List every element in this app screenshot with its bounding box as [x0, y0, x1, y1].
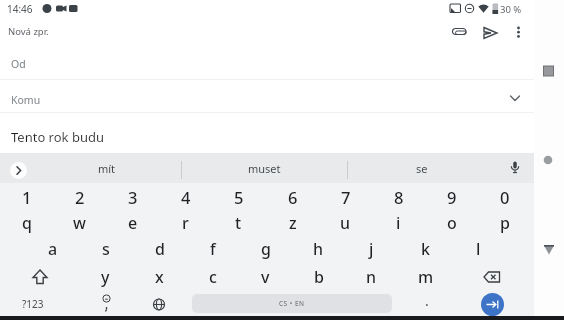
button[interactable] — [0, 113, 535, 153]
button[interactable]: 9 — [425, 184, 478, 210]
button[interactable]: . — [400, 288, 453, 313]
button[interactable]: 5 — [212, 184, 265, 210]
staticText: o — [447, 212, 457, 234]
staticText: e — [128, 212, 138, 234]
button[interactable]: h — [292, 236, 345, 262]
button[interactable]: g — [239, 236, 292, 262]
button[interactable]: k — [399, 236, 452, 262]
button[interactable]: n — [345, 263, 398, 291]
button[interactable]: 0 — [478, 184, 531, 210]
staticText: 14:46 — [7, 2, 33, 16]
button[interactable]: 8 — [372, 184, 425, 210]
button[interactable] — [0, 80, 535, 113]
button[interactable] — [480, 21, 502, 42]
staticText: u — [340, 212, 351, 234]
button[interactable] — [0, 48, 535, 80]
staticText: 9 — [447, 186, 457, 208]
staticText: 0 — [500, 186, 510, 208]
staticText: Od — [11, 57, 26, 71]
button[interactable]: 1 — [0, 184, 53, 210]
staticText: Nová zpr. — [8, 25, 49, 38]
staticText: a — [48, 238, 58, 260]
staticText: b — [314, 266, 324, 288]
button[interactable]: b — [292, 263, 345, 291]
staticText: 4 — [181, 186, 191, 208]
button[interactable]: CS • EN — [192, 294, 392, 313]
button[interactable]: 2 — [53, 184, 106, 210]
button[interactable]: p — [478, 210, 531, 236]
button[interactable]: c — [186, 263, 239, 291]
button[interactable]: muset — [184, 155, 344, 181]
staticText: CS • EN — [279, 299, 305, 308]
staticText: i — [396, 212, 401, 234]
button[interactable]: q — [0, 210, 53, 236]
staticText: z — [289, 212, 297, 234]
button[interactable] — [534, 145, 564, 175]
button[interactable]: s — [79, 236, 132, 262]
staticText: l — [476, 238, 481, 260]
button[interactable] — [0, 263, 80, 291]
button[interactable] — [504, 157, 526, 179]
button[interactable]: v — [239, 263, 292, 291]
button[interactable] — [510, 21, 528, 42]
button[interactable]: ?123 — [6, 291, 60, 316]
staticText: Komu — [11, 93, 41, 107]
staticText: m — [418, 266, 434, 288]
button[interactable]: t — [212, 210, 265, 236]
button[interactable] — [10, 162, 27, 179]
staticText: s — [102, 238, 110, 260]
staticText: 7 — [341, 186, 351, 208]
button[interactable]: o — [425, 210, 478, 236]
button[interactable]: l — [452, 236, 505, 262]
button[interactable]: w — [53, 210, 106, 236]
staticText: se — [416, 161, 428, 176]
button[interactable] — [466, 263, 520, 291]
button[interactable] — [534, 56, 564, 86]
staticText: 8 — [394, 186, 404, 208]
staticText: ?123 — [22, 297, 44, 311]
staticText: k — [421, 238, 430, 260]
button[interactable]: f — [186, 236, 239, 262]
staticText: 5 — [234, 186, 244, 208]
button[interactable]: r — [159, 210, 212, 236]
button[interactable]: 4 — [159, 184, 212, 210]
button[interactable] — [80, 291, 133, 316]
button[interactable]: e — [106, 210, 159, 236]
staticText: t — [235, 212, 242, 234]
staticText: x — [155, 266, 164, 288]
staticText: p — [500, 212, 510, 234]
button[interactable]: y — [79, 263, 132, 291]
button[interactable] — [448, 21, 471, 42]
button[interactable]: se — [350, 155, 494, 181]
button[interactable]: mít — [40, 155, 174, 181]
staticText: y — [101, 266, 110, 288]
button[interactable]: 3 — [106, 184, 159, 210]
button[interactable]: j — [345, 236, 398, 262]
button[interactable]: z — [266, 210, 319, 236]
staticText: f — [210, 238, 216, 260]
staticText: v — [261, 266, 270, 288]
button[interactable]: 6 — [266, 184, 319, 210]
button[interactable]: u — [319, 210, 372, 236]
staticText: 2 — [75, 186, 85, 208]
button[interactable]: m — [399, 263, 452, 291]
staticText: d — [155, 238, 165, 260]
button[interactable] — [534, 231, 564, 261]
button[interactable] — [133, 291, 186, 316]
staticText: h — [313, 238, 324, 260]
staticText: mít — [98, 161, 116, 176]
staticText: 30 % — [500, 3, 522, 16]
staticText: Tento rok budu — [11, 128, 104, 146]
staticText: n — [366, 266, 377, 288]
button[interactable]: i — [372, 210, 425, 236]
staticText: w — [73, 212, 86, 234]
button[interactable]: 7 — [319, 184, 372, 210]
staticText: g — [261, 238, 271, 260]
staticText: r — [182, 212, 189, 234]
staticText: j — [369, 238, 374, 260]
button[interactable]: x — [133, 263, 186, 291]
button[interactable] — [481, 293, 504, 316]
button[interactable]: d — [133, 236, 186, 262]
staticText: muset — [248, 161, 281, 176]
button[interactable]: a — [26, 236, 79, 262]
